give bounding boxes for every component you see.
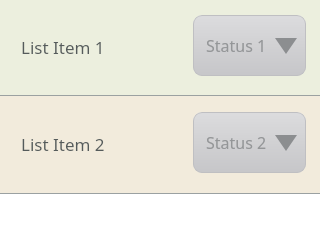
staticText: List Item 1 <box>21 36 105 59</box>
button[interactable]: List Item 2 <box>0 96 320 193</box>
staticText: Status 1 <box>206 35 267 57</box>
button[interactable]: Status 1 <box>193 15 306 76</box>
staticText: Status 2 <box>206 132 267 154</box>
button[interactable]: Status 2 <box>193 112 306 173</box>
other: Expand status options <box>275 135 297 151</box>
button[interactable]: List Item 1 <box>0 0 320 95</box>
staticText: List Item 2 <box>21 133 105 156</box>
other: Expand status options <box>275 38 297 54</box>
